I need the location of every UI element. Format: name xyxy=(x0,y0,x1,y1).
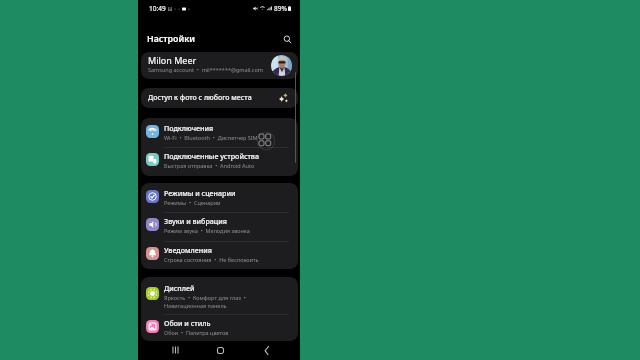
button[interactable]: Дисплей xyxy=(141,277,298,314)
staticText: Быстрая отправка • Android Auto xyxy=(164,162,255,169)
staticText: Режимы • Сценарии xyxy=(164,199,221,206)
button[interactable]: Режимы и сценарии xyxy=(141,183,298,212)
staticText: Яркость • Комфорт для глаз • Навигационн… xyxy=(164,294,246,310)
staticText: Настройки xyxy=(147,33,196,45)
staticText: Samsung account • mil*******@gmail.com xyxy=(148,66,263,73)
staticText: 89% xyxy=(274,4,287,13)
button[interactable]: Подключения xyxy=(141,118,298,147)
button[interactable]: Уведомления xyxy=(141,242,298,269)
staticText: Обои • Палитра цветов xyxy=(164,329,229,336)
staticText: Режим звука • Мелодия звонка xyxy=(164,227,250,234)
staticText: Подключенные устройства xyxy=(164,151,259,161)
button[interactable]: Home xyxy=(213,343,227,357)
staticText: Звуки и вибрация xyxy=(164,216,227,226)
button[interactable]: Search xyxy=(281,33,293,45)
staticText: Wi-Fi • Bluetooth • Диспетчер SIM xyxy=(164,134,258,141)
staticText: Дисплей xyxy=(164,283,195,293)
staticText: Режимы и сценарии xyxy=(164,188,236,198)
button[interactable]: Milon Meer xyxy=(141,52,298,79)
button[interactable]: Recents xyxy=(168,343,182,357)
staticText: Доступ к фото с любого места xyxy=(148,93,252,103)
button[interactable]: Доступ к фото с любого места xyxy=(141,88,298,108)
staticText: Подключения xyxy=(164,123,214,133)
staticText: Уведомления xyxy=(164,245,212,255)
button[interactable]: Подключенные устройства xyxy=(141,148,298,176)
button[interactable]: Back xyxy=(259,343,273,357)
staticText: Milon Meer xyxy=(148,54,197,66)
staticText: 10:49 xyxy=(149,4,166,13)
staticText: Строка состояния • Не беспокоить xyxy=(164,256,259,263)
button[interactable]: Звуки и вибрация xyxy=(141,213,298,241)
staticText: Обои и стиль xyxy=(164,318,211,328)
button[interactable]: Обои и стиль xyxy=(141,315,298,341)
